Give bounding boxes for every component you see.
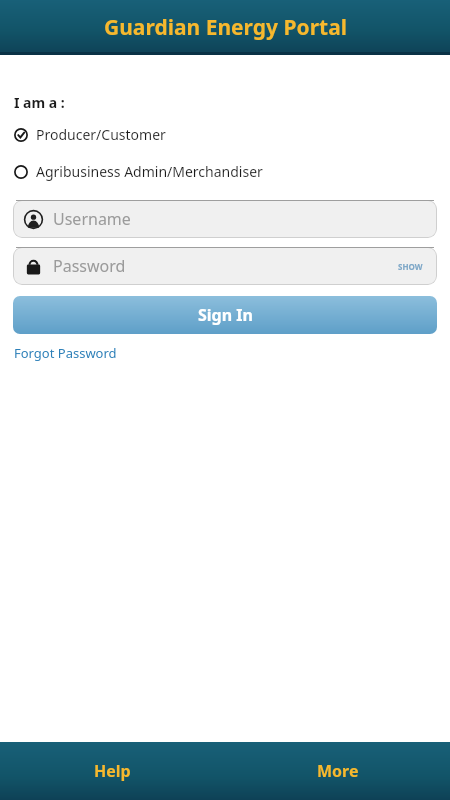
button[interactable]: More (225, 742, 450, 800)
button[interactable]: Producer/Customer (0, 123, 450, 146)
button[interactable]: Help (0, 742, 225, 800)
staticText: I am a : (14, 93, 65, 112)
staticText: Password (53, 255, 126, 277)
staticText: Forgot Password (14, 344, 117, 362)
button[interactable]: SHOW (396, 259, 425, 274)
button[interactable] (13, 200, 437, 238)
staticText: Username (53, 208, 131, 230)
button[interactable]: Agribusiness Admin/Merchandiser (0, 160, 450, 183)
staticText: Producer/Customer (36, 125, 166, 144)
button[interactable]: Sign In (13, 296, 437, 334)
button[interactable] (13, 247, 437, 285)
staticText: SHOW (398, 261, 423, 272)
other: Password (24, 257, 43, 276)
staticText: More (317, 760, 359, 782)
staticText: Guardian Energy Portal (104, 13, 347, 42)
button[interactable]: Forgot Password (14, 342, 117, 364)
staticText: Agribusiness Admin/Merchandiser (36, 162, 263, 181)
other: User (24, 210, 43, 229)
staticText: Sign In (198, 304, 253, 326)
staticText: Help (94, 760, 131, 782)
